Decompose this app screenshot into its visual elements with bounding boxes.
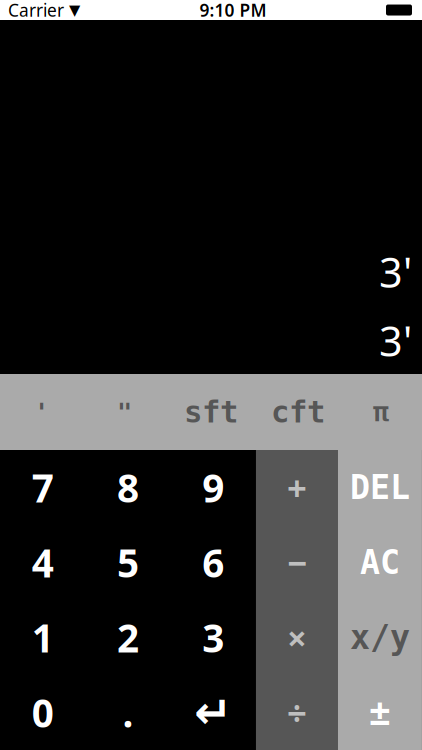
button[interactable]: Multiply <box>256 600 338 675</box>
staticText: 3' <box>379 313 412 368</box>
staticText: 7 <box>32 462 54 513</box>
staticText: 6 <box>202 537 224 588</box>
staticText: x/y <box>350 619 410 656</box>
button[interactable]: 4 <box>0 525 85 600</box>
button[interactable]: sft <box>166 374 256 450</box>
button[interactable]: 7 <box>0 450 85 525</box>
staticText: π <box>373 397 389 427</box>
button[interactable]: ' <box>0 374 83 450</box>
staticText: Carrier <box>8 0 64 21</box>
staticText: DEL <box>350 469 410 506</box>
button[interactable]: 1 <box>0 600 85 675</box>
button[interactable]: Plus <box>256 450 338 525</box>
button[interactable]: Delete <box>338 450 422 525</box>
staticText: ↵ <box>194 687 232 738</box>
staticText: 1 <box>32 612 54 663</box>
button[interactable]: " <box>83 374 166 450</box>
button[interactable]: 9 <box>171 450 256 525</box>
staticText: " <box>117 398 132 426</box>
staticText: ÷ <box>287 689 307 735</box>
staticText: sft <box>184 395 238 429</box>
button[interactable]: All clear <box>338 525 422 600</box>
button[interactable]: Swap x and y <box>338 600 422 675</box>
staticText: ± <box>369 692 391 733</box>
staticText: AC <box>360 544 400 581</box>
button[interactable]: 0 <box>0 675 85 750</box>
staticText: ' <box>34 398 49 426</box>
button[interactable]: Divide <box>256 675 338 750</box>
staticText: 0 <box>32 687 54 738</box>
button[interactable]: cft <box>256 374 340 450</box>
staticText: cft <box>271 395 325 429</box>
button[interactable]: Plus minus <box>338 675 422 750</box>
staticText: 8 <box>117 462 139 513</box>
staticText: 9:10 PM <box>199 0 266 21</box>
button[interactable]: Decimal point <box>85 675 171 750</box>
staticText: × <box>287 614 307 660</box>
staticText: 3' <box>379 244 412 299</box>
staticText: ▼ <box>69 2 80 18</box>
staticText: 4 <box>32 537 54 588</box>
staticText: 3 <box>202 612 224 663</box>
button[interactable]: 2 <box>85 600 171 675</box>
button[interactable]: π <box>340 374 422 450</box>
staticText: 2 <box>117 612 139 663</box>
button[interactable]: 6 <box>171 525 256 600</box>
staticText: 5 <box>117 537 139 588</box>
button[interactable]: Enter <box>171 675 256 750</box>
button[interactable]: Minus <box>256 525 338 600</box>
staticText: . <box>122 687 133 738</box>
staticText: 9 <box>202 462 224 513</box>
button[interactable]: 8 <box>85 450 171 525</box>
button[interactable]: 5 <box>85 525 171 600</box>
button[interactable]: 3 <box>171 600 256 675</box>
staticText: − <box>287 539 307 585</box>
staticText: + <box>287 464 307 510</box>
